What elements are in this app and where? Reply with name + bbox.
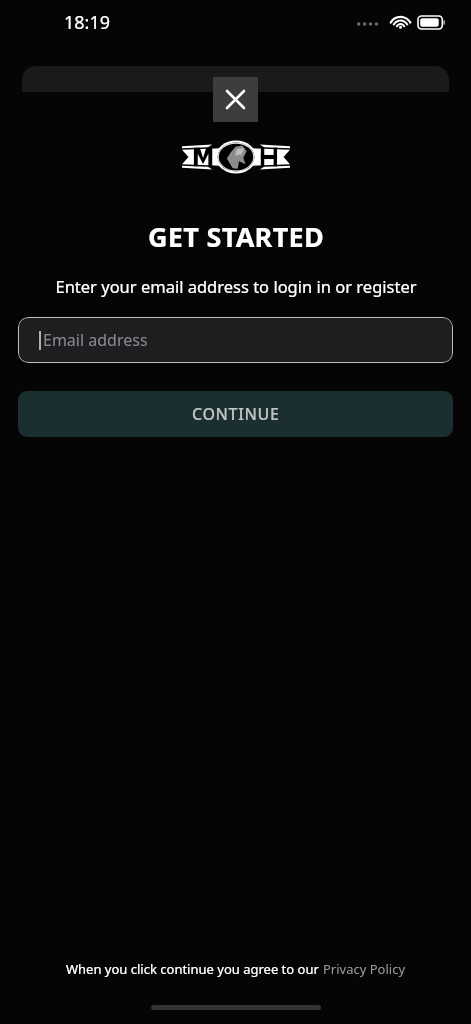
staticText: CONTINUE bbox=[192, 403, 280, 425]
staticText: 18:19 bbox=[64, 10, 111, 35]
staticText: GET STARTED bbox=[148, 218, 324, 255]
button[interactable]: Close bbox=[213, 77, 258, 122]
button[interactable]: CONTINUE bbox=[18, 391, 453, 437]
staticText: When you click continue you agree to our bbox=[66, 960, 323, 978]
staticText: Privacy Policy bbox=[323, 960, 406, 978]
staticText: Enter your email address to login in or … bbox=[55, 275, 417, 297]
button[interactable]: When you click continue you agree to our bbox=[66, 960, 406, 978]
staticText: Email address bbox=[43, 329, 148, 351]
button[interactable]: Email address bbox=[18, 317, 453, 363]
